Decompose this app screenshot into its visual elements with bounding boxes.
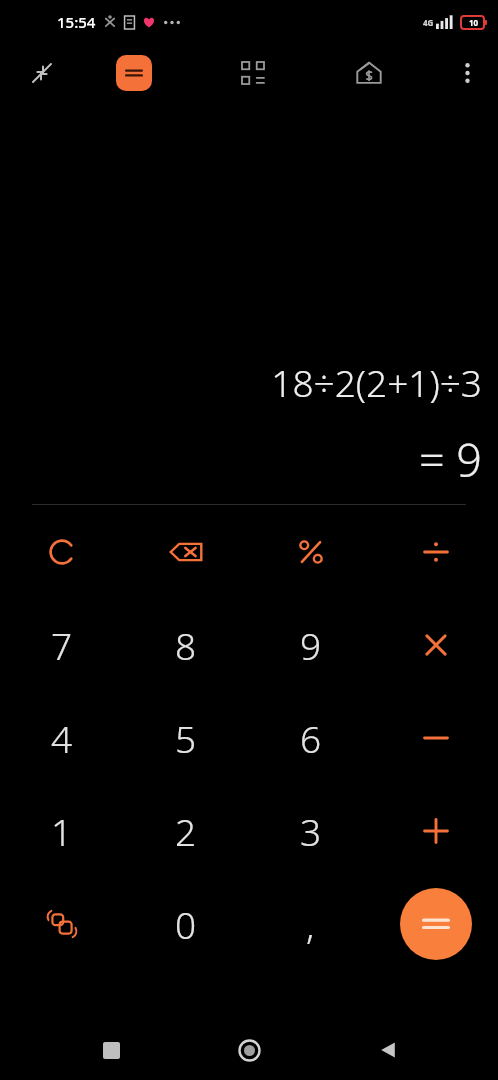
staticText: 7	[51, 620, 73, 670]
button[interactable]: Calculator	[116, 55, 152, 91]
button[interactable]: 2	[124, 784, 248, 877]
button[interactable]: 5	[124, 691, 248, 784]
button[interactable]: 7	[0, 598, 124, 691]
button[interactable]: 9	[248, 598, 373, 691]
button[interactable]: Plus	[373, 784, 498, 877]
button[interactable]: Clear	[0, 505, 124, 598]
staticText: 8	[175, 620, 197, 670]
button[interactable]: More options	[446, 52, 488, 94]
button[interactable]: Divide	[373, 505, 498, 598]
staticText: 3	[300, 806, 322, 856]
staticText: 15:54	[57, 12, 96, 32]
button[interactable]: Minus	[373, 691, 498, 784]
staticText: 0	[175, 899, 197, 949]
button[interactable]: Collapse	[22, 53, 62, 93]
staticText: ,	[306, 899, 315, 949]
staticText: 9	[300, 620, 322, 670]
staticText: 2	[175, 806, 197, 856]
staticText: 10	[469, 17, 479, 28]
button[interactable]: 8	[124, 598, 248, 691]
button[interactable]: ,	[248, 877, 373, 970]
button[interactable]: Unit converter	[232, 52, 274, 94]
staticText: 5	[175, 713, 197, 763]
button[interactable]: 4	[0, 691, 124, 784]
button[interactable]: Multiply	[373, 598, 498, 691]
staticText: 1	[51, 806, 73, 856]
button[interactable]: Home	[221, 1022, 277, 1078]
button[interactable]: Convert	[0, 877, 124, 970]
button[interactable]: Loan calculator	[347, 51, 391, 95]
button[interactable]: Equals	[400, 888, 472, 960]
staticText: 6	[300, 713, 322, 763]
button[interactable]: Percent	[248, 505, 373, 598]
button[interactable]: Recent apps	[83, 1022, 139, 1078]
button[interactable]: Back	[360, 1022, 416, 1078]
staticText: 4G	[423, 17, 434, 28]
staticText: 18÷2(2+1)÷3	[271, 357, 482, 407]
button[interactable]: 0	[124, 877, 248, 970]
staticText: = 9	[418, 429, 482, 490]
button[interactable]: 6	[248, 691, 373, 784]
button[interactable]: Backspace	[124, 505, 248, 598]
staticText: 4	[51, 713, 73, 763]
button[interactable]: 1	[0, 784, 124, 877]
button[interactable]: 3	[248, 784, 373, 877]
